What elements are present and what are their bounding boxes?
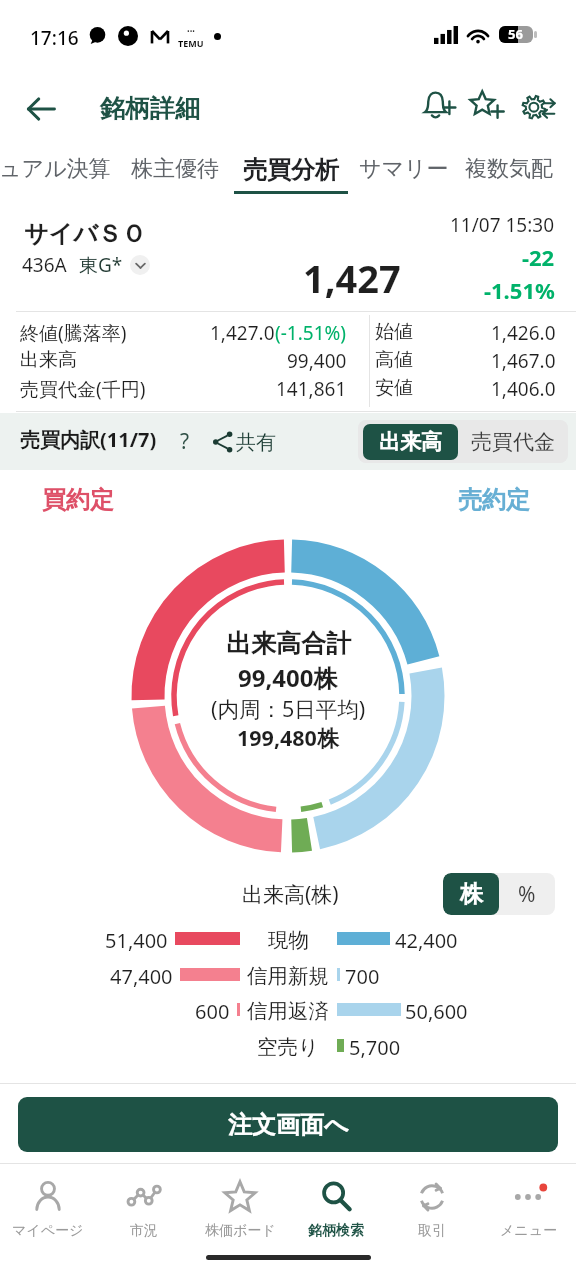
- button[interactable]: メニュー: [480, 1164, 576, 1244]
- staticText: 50,600: [405, 998, 468, 1025]
- staticText: 空売り: [257, 1034, 319, 1060]
- staticText: サイバＳＯ: [24, 219, 146, 249]
- staticText: 売買代金: [471, 429, 555, 455]
- staticText: 199,480株: [237, 723, 339, 752]
- staticText: -1.51%: [484, 275, 555, 305]
- staticText: 1,406.0: [491, 376, 556, 402]
- button[interactable]: Add alert: [422, 88, 456, 122]
- staticText: 141,861: [276, 376, 347, 402]
- button[interactable]: 株価ボード: [192, 1164, 288, 1244]
- staticText: 436A: [22, 252, 67, 278]
- staticText: 売約定: [458, 485, 530, 515]
- staticText: 複数気配: [465, 155, 553, 183]
- staticText: 株: [460, 880, 483, 909]
- staticText: 56: [508, 26, 523, 42]
- staticText: 51,400: [105, 927, 168, 954]
- staticText: 99,400株: [238, 661, 338, 694]
- staticText: 1,467.0: [491, 348, 556, 374]
- staticText: 600: [195, 998, 230, 1025]
- staticText: 17:16: [30, 25, 79, 51]
- staticText: 99,400: [287, 348, 347, 374]
- staticText: 出来高合計: [226, 628, 351, 659]
- button[interactable]: 取引: [384, 1164, 480, 1244]
- staticText: 銘柄検索: [308, 1222, 364, 1240]
- staticText: •••: [187, 27, 195, 37]
- button[interactable]: ュアル決算: [0, 146, 111, 200]
- staticText: 共有: [236, 430, 276, 455]
- staticText: 銘柄詳細: [100, 93, 200, 124]
- staticText: 47,400: [110, 963, 173, 990]
- staticText: 1,426.0: [491, 320, 556, 346]
- staticText: 信用新規: [247, 963, 329, 989]
- staticText: 1,427.0: [210, 320, 275, 346]
- staticText: 出来高(株): [242, 880, 339, 909]
- staticText: 売買分析: [243, 155, 339, 185]
- staticText: メニュー: [500, 1222, 557, 1240]
- staticText: 東G*: [79, 252, 123, 278]
- button[interactable]: 共有: [212, 427, 274, 457]
- staticText: 5,700: [349, 1034, 401, 1061]
- staticText: 株主優待: [131, 155, 219, 183]
- staticText: 終値(騰落率): [20, 320, 127, 346]
- staticText: 安値: [375, 376, 413, 400]
- staticText: 42,400: [395, 927, 458, 954]
- button[interactable]: 市況: [96, 1164, 192, 1244]
- staticText: 信用返済: [247, 998, 329, 1024]
- button[interactable]: Help: [167, 423, 203, 459]
- button[interactable]: Add to favorites: [470, 88, 504, 122]
- staticText: 買約定: [42, 485, 114, 515]
- staticText: ?: [180, 427, 190, 456]
- staticText: 700: [345, 963, 380, 990]
- button[interactable]: 株: [443, 873, 499, 915]
- staticText: -22: [522, 242, 555, 272]
- other: Back: [0, 72, 100, 146]
- staticText: (内周：5日平均): [211, 694, 366, 723]
- button[interactable]: マイページ: [0, 1164, 96, 1244]
- staticText: 始値: [375, 320, 413, 344]
- button[interactable]: 出来高: [363, 424, 458, 460]
- button[interactable]: サマリー: [359, 146, 449, 200]
- staticText: 売買内訳(11/7): [20, 426, 157, 453]
- button[interactable]: 注文画面へ: [18, 1097, 558, 1152]
- button[interactable]: 売買代金: [458, 420, 568, 463]
- staticText: サマリー: [359, 155, 449, 183]
- staticText: 市況: [130, 1222, 158, 1240]
- staticText: 出来高: [379, 429, 442, 455]
- staticText: ュアル決算: [0, 155, 111, 183]
- staticText: 売買代金(千円): [20, 376, 146, 402]
- staticText: マイページ: [12, 1222, 84, 1240]
- button[interactable]: Expand market: [130, 255, 150, 275]
- staticText: 現物: [268, 927, 309, 953]
- button[interactable]: 株主優待: [131, 146, 219, 200]
- button[interactable]: %: [499, 873, 555, 915]
- staticText: 高値: [375, 348, 413, 372]
- button[interactable]: 銘柄検索: [288, 1164, 384, 1244]
- staticText: 株価ボード: [205, 1222, 276, 1240]
- staticText: %: [518, 880, 536, 909]
- button[interactable]: 売買分析: [243, 146, 357, 200]
- staticText: 1,427: [303, 252, 401, 304]
- staticText: 11/07 15:30: [450, 212, 555, 238]
- button[interactable]: 複数気配: [465, 146, 553, 200]
- staticText: TEMU: [178, 37, 204, 49]
- button[interactable]: Settings: [518, 88, 558, 128]
- button[interactable]: Back: [0, 72, 200, 146]
- staticText: 出来高: [20, 348, 77, 372]
- staticText: (-1.51%): [275, 320, 347, 346]
- staticText: 取引: [418, 1222, 446, 1240]
- staticText: 注文画面へ: [228, 1110, 349, 1140]
